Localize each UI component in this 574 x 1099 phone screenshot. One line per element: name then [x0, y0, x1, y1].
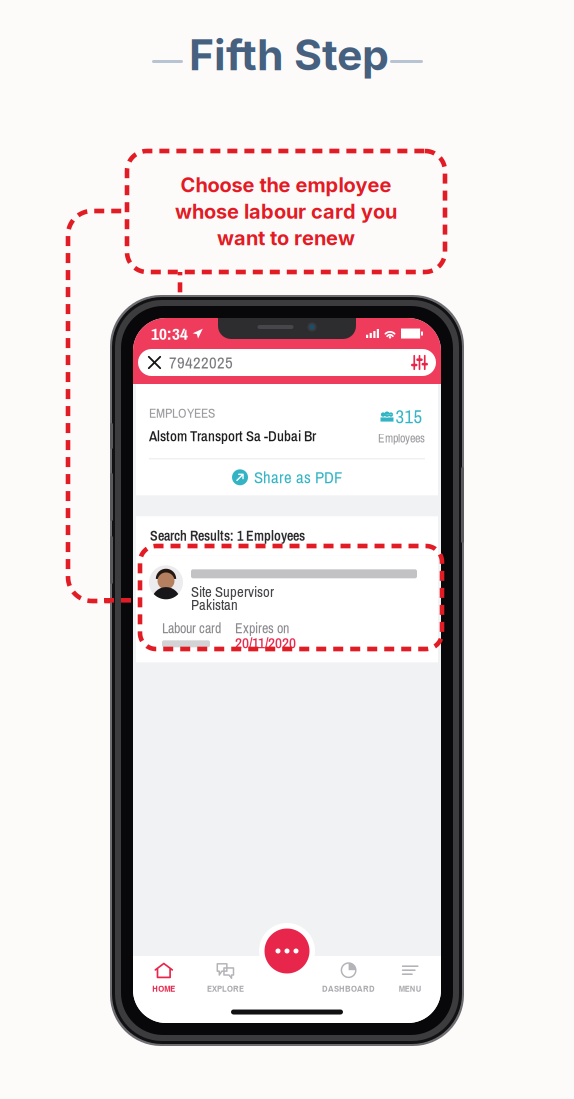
staticText: want to renew — [217, 226, 355, 250]
staticText: HOME — [152, 982, 175, 995]
staticText: Site Supervisor — [191, 582, 274, 602]
staticText: EMPLOYEES — [149, 404, 215, 422]
button[interactable]: Share as PDF — [136, 459, 438, 495]
staticText: EXPLORE — [207, 982, 244, 995]
staticText: 315 — [395, 404, 422, 429]
button[interactable]: 79422025 — [138, 349, 436, 376]
staticText: 79422025 — [169, 351, 233, 374]
staticText: MENU — [399, 982, 422, 995]
staticText: Pakistan — [191, 595, 238, 615]
staticText: 10:34 — [151, 322, 188, 345]
staticText: Alstom Transport Sa -Dubai Br — [149, 426, 316, 446]
button[interactable]: HOME — [133, 956, 195, 1001]
staticText: Employees — [378, 430, 425, 446]
button[interactable]: More actions — [259, 923, 315, 979]
button[interactable]: Site Supervisor — [136, 555, 438, 662]
staticText: Search Results: 1 Employees — [150, 526, 305, 545]
staticText: Share as PDF — [254, 466, 342, 489]
staticText: 20/11/2020 — [235, 632, 296, 653]
button[interactable]: EXPLORE — [195, 956, 256, 1001]
button[interactable]: MENU — [379, 956, 441, 1001]
button[interactable]: DASHBOARD — [318, 956, 379, 1001]
staticText: whose labour card you — [175, 199, 397, 224]
staticText: Choose the employee — [180, 173, 391, 197]
staticText: Expires on — [235, 619, 289, 638]
staticText: DASHBOARD — [322, 982, 375, 995]
staticText: Fifth Step — [189, 29, 389, 81]
staticText: Labour card — [162, 619, 221, 638]
